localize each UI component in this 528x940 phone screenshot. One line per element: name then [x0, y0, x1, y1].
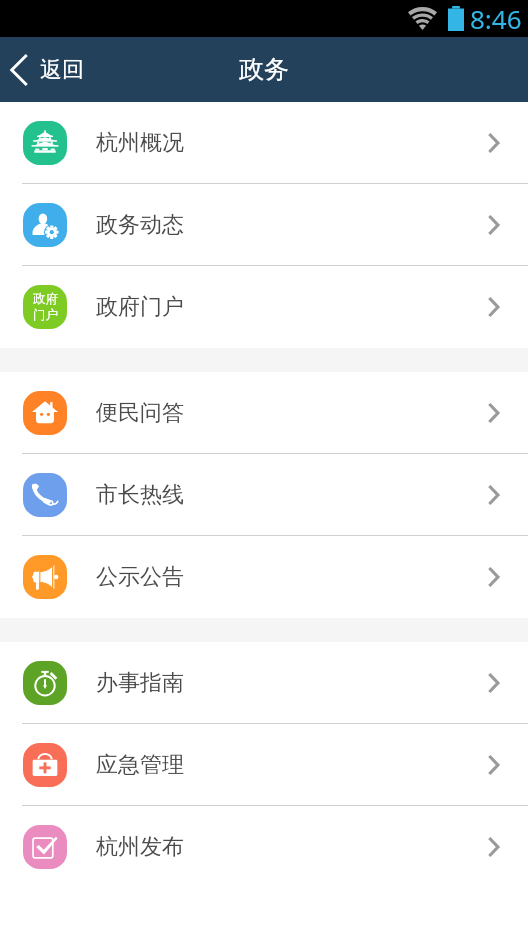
staticText: 返回 [40, 56, 84, 84]
button[interactable]: 杭州概况 [0, 102, 528, 184]
button[interactable]: 办事指南 [0, 642, 528, 724]
button[interactable]: 返回 [0, 55, 98, 85]
button[interactable]: 杭州发布 [0, 806, 528, 888]
staticText: 办事指南 [96, 669, 184, 697]
staticText: 8:46 [470, 1, 522, 36]
staticText: 杭州概况 [96, 129, 184, 157]
button[interactable]: 便民问答 [0, 372, 528, 454]
staticText: 公示公告 [96, 563, 184, 591]
button[interactable]: 应急管理 [0, 724, 528, 806]
button[interactable]: 政务动态 [0, 184, 528, 266]
staticText: 政府 门户 [33, 291, 58, 323]
button[interactable]: 市长热线 [0, 454, 528, 536]
button[interactable]: 公示公告 [0, 536, 528, 618]
staticText: 市长热线 [96, 481, 184, 509]
staticText: 政务动态 [96, 211, 184, 239]
staticText: 便民问答 [96, 399, 184, 427]
staticText: 应急管理 [96, 751, 184, 779]
button[interactable]: 政府 门户 [0, 266, 528, 348]
staticText: 政府门户 [96, 293, 184, 321]
staticText: 政务 [239, 54, 289, 85]
staticText: 杭州发布 [96, 833, 184, 861]
